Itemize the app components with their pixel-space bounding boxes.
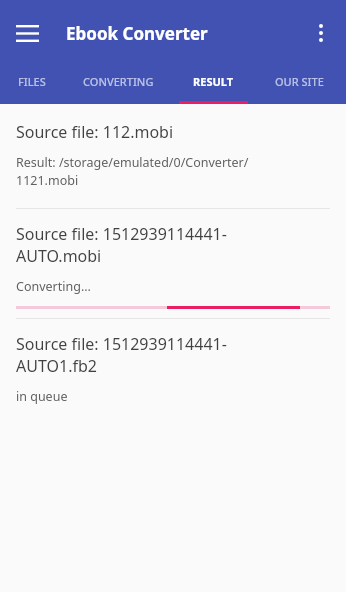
staticText: Source file: 1512939114441- AUTO1.fb2: [16, 333, 227, 377]
staticText: FILES: [18, 74, 46, 89]
staticText: Ebook Converter: [66, 22, 208, 45]
button[interactable]: Source file: 1512939114441- AUTO.mobi: [0, 223, 346, 309]
button[interactable]: CONVERTING: [63, 66, 173, 104]
button[interactable]: RESULT: [173, 66, 253, 104]
button[interactable]: Open navigation drawer: [3, 9, 51, 57]
button[interactable]: OUR SITE: [253, 66, 346, 104]
button[interactable]: FILES: [0, 66, 63, 104]
staticText: CONVERTING: [83, 74, 154, 89]
staticText: Source file: 1512939114441- AUTO.mobi: [16, 223, 227, 267]
button[interactable]: More options: [299, 11, 343, 55]
staticText: Result: /storage/emulated/0/Converter/ 1…: [16, 154, 249, 189]
button[interactable]: Source file: 112.mobi: [0, 121, 346, 189]
button[interactable]: Source file: 1512939114441- AUTO1.fb2: [0, 333, 346, 405]
staticText: Converting...: [16, 278, 91, 295]
staticText: OUR SITE: [275, 74, 324, 89]
staticText: RESULT: [193, 74, 234, 89]
staticText: Source file: 112.mobi: [16, 121, 174, 143]
staticText: in queue: [16, 388, 68, 405]
